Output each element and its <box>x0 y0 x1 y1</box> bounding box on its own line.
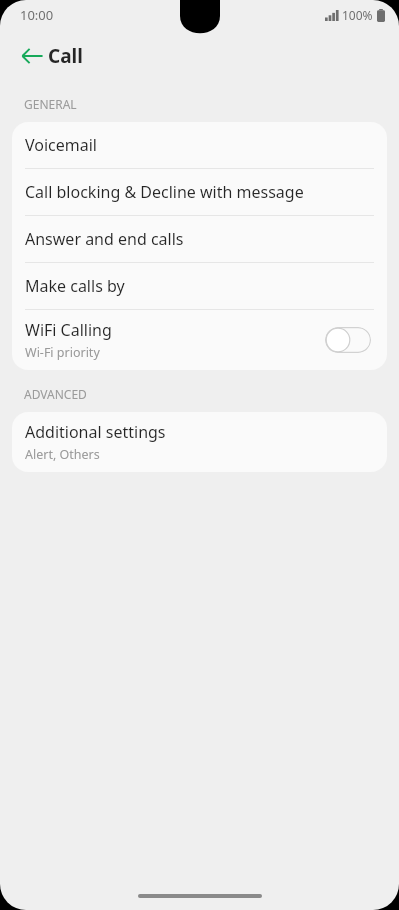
staticText: WiFi Calling <box>25 319 112 341</box>
staticText: Wi-Fi priority <box>25 344 100 361</box>
staticText: Make calls by <box>25 275 125 297</box>
button[interactable]: Voicemail <box>12 122 387 168</box>
staticText: Call blocking & Decline with message <box>25 181 304 203</box>
staticText: ADVANCED <box>24 386 87 402</box>
staticText: Voicemail <box>25 134 97 156</box>
button[interactable]: Additional settings <box>12 412 387 472</box>
staticText: Call <box>48 43 83 69</box>
button[interactable]: WiFi Calling toggle <box>325 327 371 353</box>
staticText: 10:00 <box>20 6 54 24</box>
staticText: GENERAL <box>24 96 77 112</box>
staticText: Alert, Others <box>25 446 100 463</box>
staticText: 100% <box>342 7 373 23</box>
button[interactable]: Make calls by <box>12 263 387 309</box>
button[interactable]: WiFi Calling <box>12 310 387 370</box>
button[interactable]: Back <box>10 34 54 78</box>
button[interactable]: Answer and end calls <box>12 216 387 262</box>
staticText: Answer and end calls <box>25 228 184 250</box>
staticText: Additional settings <box>25 421 166 443</box>
button[interactable]: Call blocking & Decline with message <box>12 169 387 215</box>
